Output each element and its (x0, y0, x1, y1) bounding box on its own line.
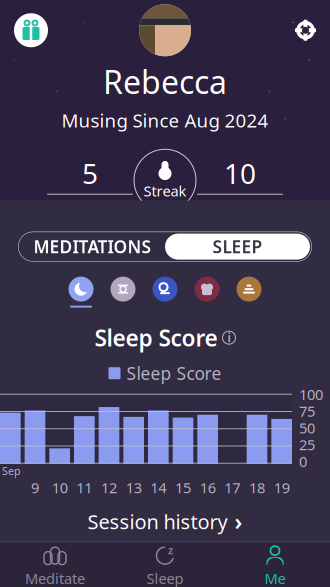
staticText: Me (264, 569, 285, 587)
staticText: › (234, 506, 242, 536)
staticText: 14 (150, 478, 166, 497)
button[interactable]: SLEEP (165, 234, 310, 260)
button[interactable]: Soundscapes (152, 277, 177, 308)
staticText: Rebecca (103, 60, 227, 103)
staticText: longest (211, 197, 268, 218)
button[interactable]: Settings (295, 20, 316, 41)
button[interactable]: Sleep (68, 277, 93, 308)
staticText: 17 (224, 478, 240, 497)
staticText: current (62, 197, 118, 218)
staticText: Sep (2, 464, 21, 478)
staticText: 12 (101, 478, 117, 497)
button[interactable]: Me (220, 543, 330, 587)
button[interactable]: Courses (236, 277, 261, 308)
staticText: 100 (299, 384, 323, 404)
staticText: 11 (76, 478, 92, 497)
staticText: SLEEP (212, 235, 262, 258)
button[interactable]: Timed (110, 277, 135, 308)
button[interactable]: Gifts (14, 13, 48, 47)
staticText: Sleep (146, 569, 183, 587)
button[interactable]: MEDITATIONS (20, 234, 165, 260)
staticText: Musing Since Aug 2024 (61, 108, 268, 133)
staticText: 16 (200, 478, 216, 497)
staticText: 18 (249, 478, 265, 497)
staticText: 9 (31, 478, 39, 497)
button[interactable]: Session history (0, 501, 330, 541)
staticText: 15 (175, 478, 191, 497)
staticText: 75 (299, 401, 315, 421)
staticText: 50 (299, 418, 315, 437)
staticText: Session history (87, 508, 227, 535)
staticText: Sleep Score (94, 323, 217, 353)
staticText: 0 (299, 451, 307, 471)
staticText: i (227, 330, 230, 346)
button[interactable]: Meditate (0, 543, 110, 587)
staticText: 25 (299, 435, 315, 454)
button[interactable]: About Sleep Score (222, 330, 235, 346)
staticText: Sleep Score (126, 362, 221, 385)
staticText: Meditate (25, 569, 85, 587)
staticText: 19 (274, 478, 290, 497)
staticText: 13 (126, 478, 142, 497)
staticText: 10 (52, 478, 68, 497)
button[interactable]: Favorites (194, 277, 219, 308)
staticText: Streak (143, 181, 186, 200)
staticText: z (168, 543, 173, 557)
button[interactable]: z (110, 543, 220, 587)
staticText: MEDITATIONS (33, 235, 151, 258)
staticText: 10 (224, 154, 256, 192)
staticText: 5 (82, 154, 98, 192)
